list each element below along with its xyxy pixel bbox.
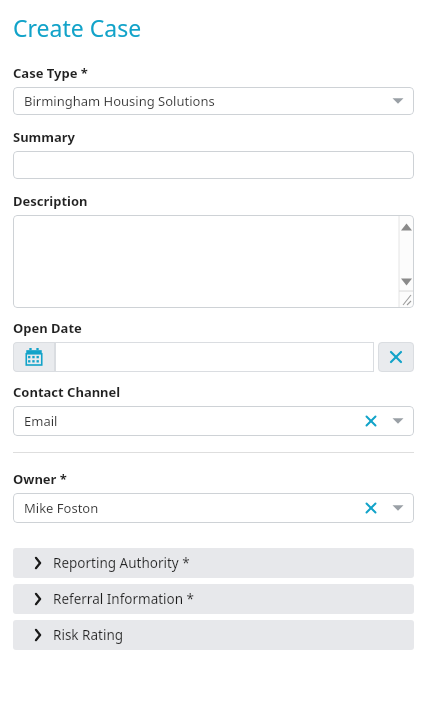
button[interactable]: Clear open date — [378, 342, 414, 372]
button[interactable]: Mike Foston — [13, 493, 414, 523]
button[interactable] — [13, 151, 414, 179]
staticText: Referral Information * — [53, 590, 195, 608]
button[interactable] — [55, 342, 374, 372]
button[interactable]: Open calendar picker — [13, 342, 55, 372]
staticText: Owner * — [13, 470, 67, 488]
staticText: Description — [13, 192, 88, 210]
staticText: Create Case — [13, 12, 142, 43]
staticText: Open Date — [13, 319, 82, 337]
button[interactable]: Clear contact channel — [362, 412, 380, 430]
staticText: Contact Channel — [13, 383, 121, 401]
button[interactable] — [13, 215, 414, 308]
staticText: Case Type * — [13, 64, 88, 82]
staticText: Risk Rating — [53, 626, 124, 644]
button[interactable]: Referral Information * — [13, 584, 414, 614]
button[interactable]: Reporting Authority * — [13, 548, 414, 578]
staticText: Mike Foston — [24, 499, 362, 517]
button[interactable]: Birmingham Housing Solutions — [13, 87, 414, 115]
button[interactable]: Email — [13, 406, 414, 436]
staticText: Birmingham Housing Solutions — [24, 92, 390, 110]
staticText: Email — [24, 412, 362, 430]
staticText: Summary — [13, 128, 75, 146]
button[interactable]: Clear owner — [362, 499, 380, 517]
staticText: Reporting Authority * — [53, 554, 190, 572]
button[interactable]: Risk Rating — [13, 620, 414, 650]
